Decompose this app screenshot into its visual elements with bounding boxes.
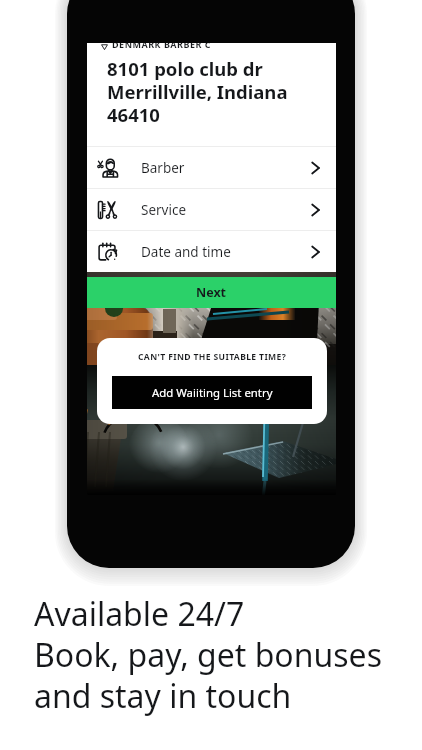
button[interactable]: Barber	[87, 147, 336, 188]
button[interactable]: Next	[87, 277, 336, 308]
staticText: Add Waiiting List entry	[152, 385, 273, 401]
staticText: 8101 polo club dr Merrillville, Indiana …	[107, 56, 288, 127]
staticText: Barber	[141, 159, 185, 177]
staticText: Available 24/7 Book, pay, get bonuses an…	[34, 592, 382, 718]
staticText: Next	[196, 284, 227, 301]
button[interactable]: Service	[87, 189, 336, 230]
staticText: DENMARK BARBER C	[112, 38, 212, 50]
staticText: CAN'T FIND THE SUITABLE TIME?	[138, 351, 287, 363]
staticText: Date and time	[141, 243, 231, 261]
staticText: Service	[141, 201, 187, 219]
other: Open	[308, 245, 322, 259]
other: Open	[308, 203, 322, 217]
other: Open	[308, 161, 322, 175]
button[interactable]: Add Waiiting List entry	[112, 376, 312, 409]
button[interactable]: Date and time	[87, 231, 336, 272]
